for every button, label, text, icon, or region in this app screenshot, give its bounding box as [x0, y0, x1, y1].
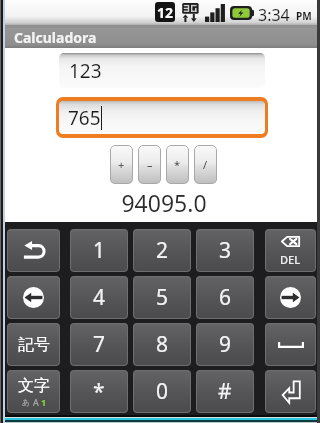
staticText: 1 [93, 236, 106, 265]
button[interactable]: 3 [196, 229, 254, 272]
staticText: A [33, 396, 39, 408]
staticText: / [203, 157, 208, 172]
staticText: Calculadora [14, 28, 97, 47]
staticText: 9 [219, 330, 232, 359]
button[interactable]: moji [7, 370, 60, 413]
staticText: – [147, 157, 153, 172]
staticText: 8 [156, 330, 169, 359]
button[interactable]: 9 [196, 323, 254, 366]
button[interactable]: 123 [59, 53, 265, 88]
staticText: 12 [157, 3, 174, 22]
button[interactable]: 2 [133, 229, 191, 272]
staticText: * [174, 157, 181, 172]
staticText: 7 [93, 330, 106, 359]
staticText: DEL [280, 252, 301, 267]
button[interactable]: * [166, 145, 189, 184]
button[interactable]: 1 [70, 229, 128, 272]
button[interactable]: / [194, 145, 217, 184]
staticText: 記号 [18, 335, 50, 355]
button[interactable]: # [196, 370, 254, 413]
staticText: 0 [156, 377, 169, 406]
staticText: 3:34 [258, 4, 290, 26]
staticText: 1 [41, 396, 47, 408]
staticText: 3 [219, 236, 232, 265]
button[interactable]: 7 [70, 323, 128, 366]
button[interactable]: 4 [70, 276, 128, 319]
button[interactable]: undo [7, 229, 60, 272]
button[interactable]: kigou [7, 323, 60, 366]
button[interactable]: right [265, 276, 316, 319]
button[interactable]: 0 [133, 370, 191, 413]
button[interactable]: + [110, 145, 133, 184]
button[interactable]: left [7, 276, 60, 319]
button[interactable]: del [265, 229, 316, 272]
staticText: 123 [69, 58, 102, 84]
staticText: あ [22, 397, 31, 407]
staticText: 765 [68, 105, 101, 131]
button[interactable]: 5 [133, 276, 191, 319]
staticText: 4 [93, 283, 106, 312]
button[interactable]: – [138, 145, 161, 184]
staticText: 5 [156, 283, 169, 312]
staticText: 94095.0 [8, 187, 320, 218]
staticText: 6 [219, 283, 232, 312]
button[interactable]: space [265, 323, 316, 366]
staticText: PM [296, 9, 312, 23]
button[interactable]: 765 [59, 101, 265, 134]
staticText: # [218, 377, 232, 406]
staticText: 2 [156, 236, 169, 265]
button[interactable]: * [70, 370, 128, 413]
button[interactable]: 8 [133, 323, 191, 366]
button[interactable]: 6 [196, 276, 254, 319]
staticText: 文字 [18, 376, 50, 396]
staticText: + [118, 157, 125, 172]
staticText: * [93, 377, 105, 406]
button[interactable]: enter [265, 370, 316, 413]
